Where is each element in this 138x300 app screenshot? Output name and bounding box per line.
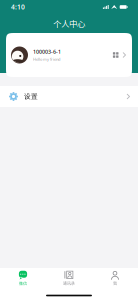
staticText: 微信: [19, 281, 27, 286]
staticText: 4:10: [11, 3, 25, 11]
button[interactable]: 我: [92, 270, 138, 287]
staticText: 设置: [24, 92, 38, 101]
button[interactable]: 微信: [0, 270, 46, 287]
staticText: 通讯录: [63, 281, 75, 286]
staticText: 个人中心: [53, 17, 85, 29]
staticText: 100003-6-1: [33, 48, 61, 55]
staticText: Hello my friend: [33, 57, 60, 62]
button[interactable]: 通讯录: [46, 270, 92, 287]
button[interactable]: 100003-6-1: [6, 33, 132, 77]
button[interactable]: 设置: [0, 86, 138, 107]
staticText: 我: [113, 281, 117, 286]
